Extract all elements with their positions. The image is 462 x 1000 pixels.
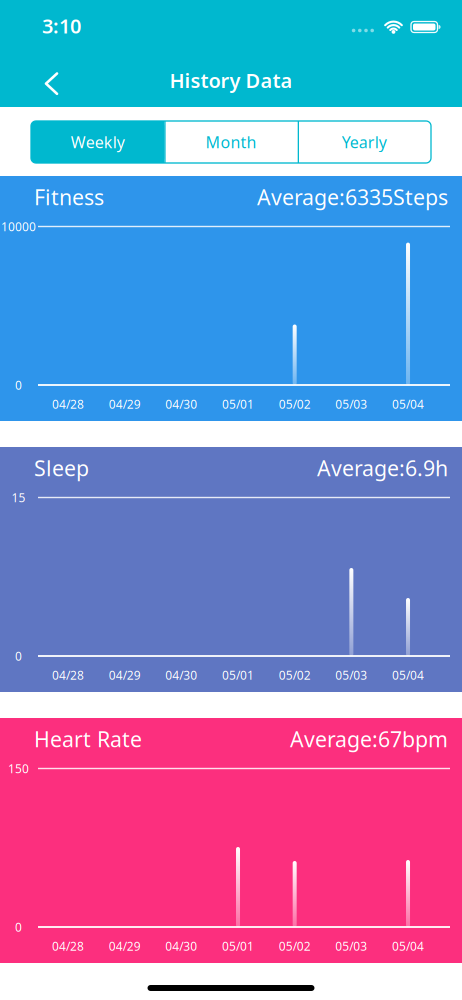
staticText: 04/28 bbox=[52, 938, 84, 954]
staticText: 10000 bbox=[1, 218, 36, 234]
staticText: 3:10 bbox=[42, 12, 81, 39]
staticText: Average:67bpm bbox=[290, 725, 448, 753]
staticText: 04/28 bbox=[52, 396, 84, 412]
staticText: 04/28 bbox=[52, 667, 84, 683]
staticText: 05/04 bbox=[392, 396, 424, 412]
staticText: 05/02 bbox=[279, 667, 311, 683]
staticText: 05/02 bbox=[279, 396, 311, 412]
staticText: 15 bbox=[11, 489, 25, 505]
staticText: Heart Rate bbox=[34, 725, 142, 753]
staticText: Average:6.9h bbox=[317, 454, 448, 482]
staticText: 04/29 bbox=[109, 667, 141, 683]
button[interactable]: Weekly bbox=[31, 121, 164, 163]
staticText: Fitness bbox=[34, 183, 104, 211]
staticText: 04/29 bbox=[109, 396, 141, 412]
staticText: Month bbox=[205, 131, 256, 153]
staticText: 0 bbox=[15, 919, 22, 935]
staticText: 04/30 bbox=[165, 396, 197, 412]
staticText: History Data bbox=[169, 67, 292, 94]
staticText: 150 bbox=[8, 760, 29, 776]
staticText: 04/30 bbox=[165, 667, 197, 683]
staticText: Average:6335Steps bbox=[257, 183, 448, 211]
staticText: 05/01 bbox=[222, 396, 254, 412]
staticText: 05/03 bbox=[335, 938, 367, 954]
staticText: 05/03 bbox=[335, 396, 367, 412]
staticText: 05/04 bbox=[392, 667, 424, 683]
staticText: Sleep bbox=[34, 454, 89, 482]
staticText: 0 bbox=[15, 377, 22, 393]
staticText: 05/01 bbox=[222, 667, 254, 683]
button[interactable]: Back bbox=[0, 50, 80, 107]
staticText: 04/29 bbox=[109, 938, 141, 954]
staticText: Weekly bbox=[71, 131, 125, 153]
staticText: Yearly bbox=[342, 131, 387, 153]
staticText: 05/03 bbox=[335, 667, 367, 683]
staticText: 0 bbox=[15, 648, 22, 664]
staticText: 04/30 bbox=[165, 938, 197, 954]
staticText: 05/02 bbox=[279, 938, 311, 954]
staticText: 05/01 bbox=[222, 938, 254, 954]
staticText: 05/04 bbox=[392, 938, 424, 954]
button[interactable]: Month bbox=[164, 121, 298, 163]
button[interactable]: Yearly bbox=[298, 121, 431, 163]
